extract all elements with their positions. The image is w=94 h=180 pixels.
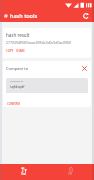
- button[interactable]: Refresh: [80, 10, 91, 21]
- staticText: sqfdsqdf: [10, 84, 25, 89]
- button[interactable]: Close: [80, 64, 89, 73]
- staticText: 2770394f50f0ceac0954c3d0c5d0ac0960: [6, 40, 72, 45]
- staticText: hash tools: [10, 12, 38, 19]
- button[interactable]: CONFIRM: [7, 102, 20, 106]
- staticText: File: [68, 172, 73, 176]
- staticText: Text: [21, 172, 26, 176]
- button[interactable]: Text: [0, 164, 47, 180]
- button[interactable]: COPY: [6, 49, 14, 53]
- staticText: hash result: [6, 32, 30, 38]
- button[interactable]: File: [47, 164, 94, 180]
- staticText: Compare to: [10, 79, 24, 82]
- staticText: Compare to: [6, 66, 29, 71]
- button[interactable]: SHARE: [16, 49, 25, 53]
